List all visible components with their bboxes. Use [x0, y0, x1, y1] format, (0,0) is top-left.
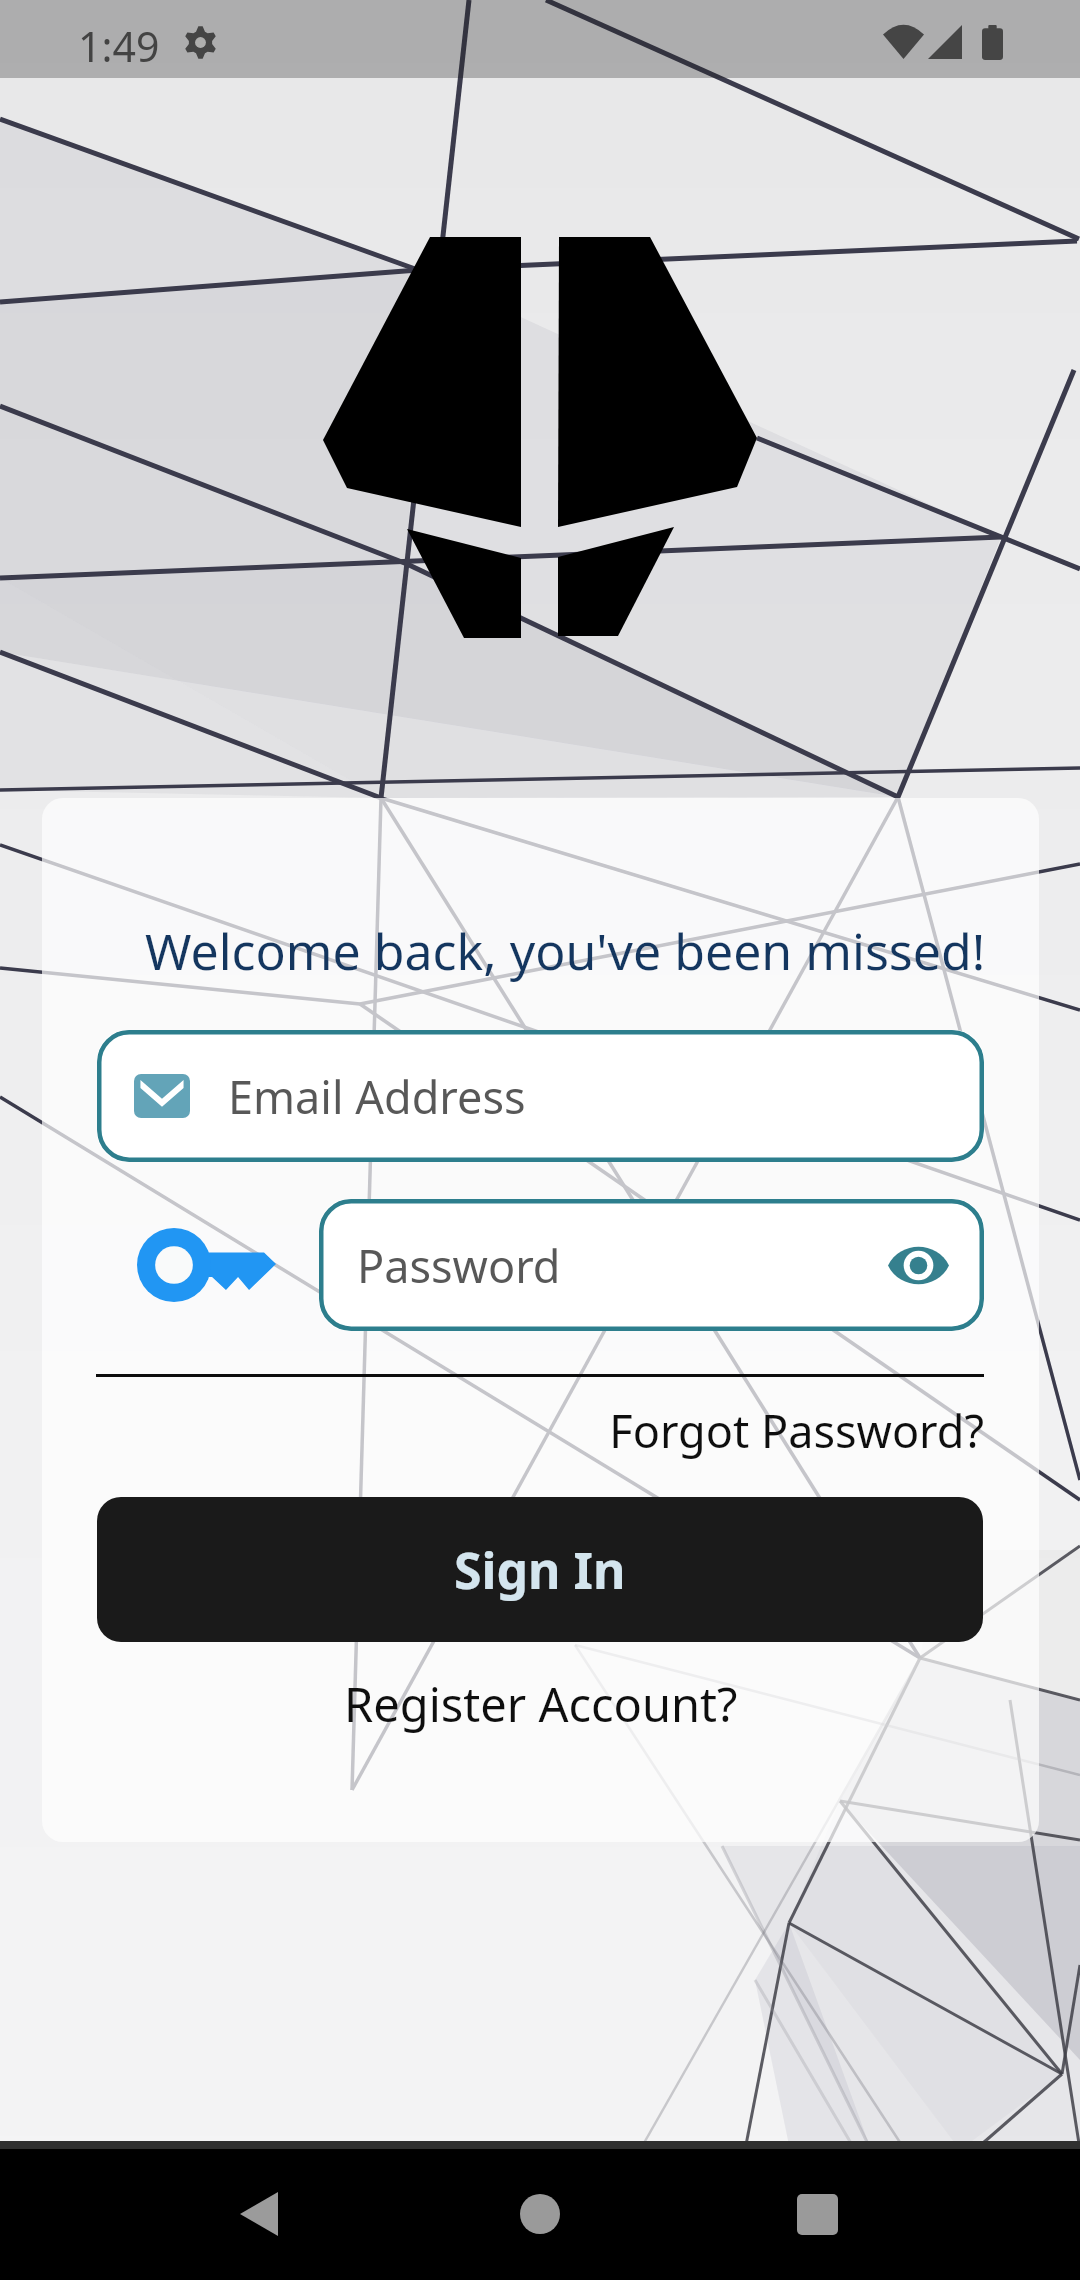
button[interactable]: Sign In [97, 1497, 983, 1642]
button[interactable]: Show password [879, 1226, 957, 1304]
staticText: Register Account? [344, 1672, 738, 1736]
button[interactable]: Email Address [97, 1030, 984, 1162]
staticText: 1:49 [78, 18, 160, 74]
button[interactable]: Recents [762, 2159, 872, 2269]
button[interactable]: Forgot Password? [512, 1400, 984, 1461]
button[interactable]: Register Account? [42, 1672, 1039, 1736]
staticText: Sign In [454, 1536, 626, 1604]
staticText: Email Address [228, 1066, 526, 1127]
button[interactable]: Home [485, 2159, 595, 2269]
staticText: Forgot Password? [609, 1400, 984, 1461]
button[interactable]: Password [319, 1199, 984, 1331]
button[interactable]: Back [204, 2159, 314, 2269]
staticText: Welcome back, you've been missed! [145, 917, 986, 985]
staticText: Password [357, 1235, 561, 1296]
